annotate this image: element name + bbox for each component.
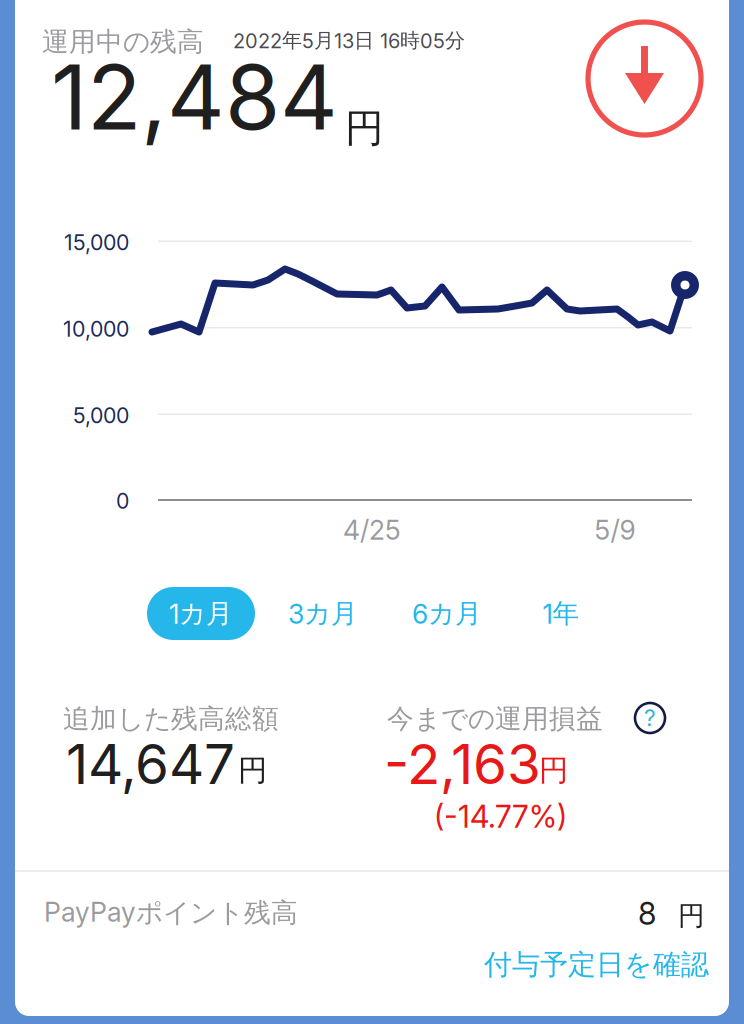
staticText: 付与予定日を確認 [484,947,709,982]
staticText: (-14.77%) [434,798,567,835]
staticText: 5,000 [73,402,129,428]
staticText: 14,647 [66,731,235,797]
staticText: 8 [638,895,656,932]
button[interactable]: ヘルプ [633,701,667,735]
button[interactable]: 1カ月 [147,587,255,640]
staticText: 円 [539,752,568,789]
staticText: 1カ月 [169,597,233,630]
staticText: 4/25 [343,514,401,546]
staticText: ? [644,704,656,732]
staticText: 0 [116,488,129,514]
staticText: 3カ月 [288,597,358,630]
staticText: 運用中の残高 [42,25,204,59]
button[interactable]: 6カ月 [393,587,501,640]
staticText: 2022年5月13日 16時05分 [233,28,465,53]
staticText: 円 [238,752,267,789]
staticText: 円 [345,104,384,153]
staticText: 15,000 [64,229,129,255]
staticText: PayPayポイント残高 [44,896,298,930]
button[interactable]: 付与予定日を確認 [484,947,709,982]
staticText: 5/9 [594,514,635,546]
staticText: -2,163 [384,731,541,797]
staticText: 1年 [542,597,579,630]
staticText: 12,484 [51,43,338,151]
button[interactable]: 損益マイナス [588,22,701,135]
staticText: 6カ月 [412,597,482,630]
staticText: 追加した残高総額 [63,702,279,736]
staticText: 円 [678,899,705,933]
staticText: 10,000 [63,316,129,342]
button[interactable]: 1年 [507,587,615,640]
button[interactable]: 3カ月 [269,587,377,640]
staticText: 今までの運用損益 [387,702,603,736]
